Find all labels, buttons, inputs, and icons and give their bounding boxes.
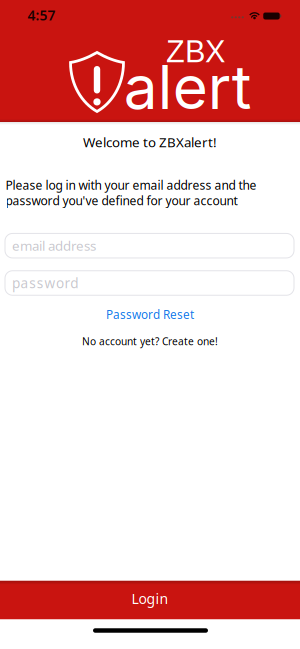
staticText: ZBX <box>166 35 225 69</box>
button[interactable]: No account yet? Create one! <box>82 334 218 348</box>
staticText: password <box>12 274 78 292</box>
staticText: Password Reset <box>106 307 194 322</box>
staticText: Welcome to ZBXalert! <box>83 133 217 151</box>
button[interactable]: Password Reset <box>106 307 194 322</box>
staticText: 4:57 <box>27 6 55 24</box>
staticText: email address <box>12 237 96 254</box>
staticText: No account yet? Create one! <box>82 334 218 348</box>
staticText: email address <box>12 237 96 254</box>
secureTextField[interactable]: password <box>12 274 294 292</box>
textField[interactable]: email address <box>12 237 294 254</box>
staticText: Login <box>131 589 168 608</box>
staticText: Please log in with your email address an… <box>5 177 256 208</box>
staticText: password <box>12 274 74 292</box>
staticText: alert <box>124 51 252 124</box>
button[interactable]: Login <box>0 581 300 619</box>
